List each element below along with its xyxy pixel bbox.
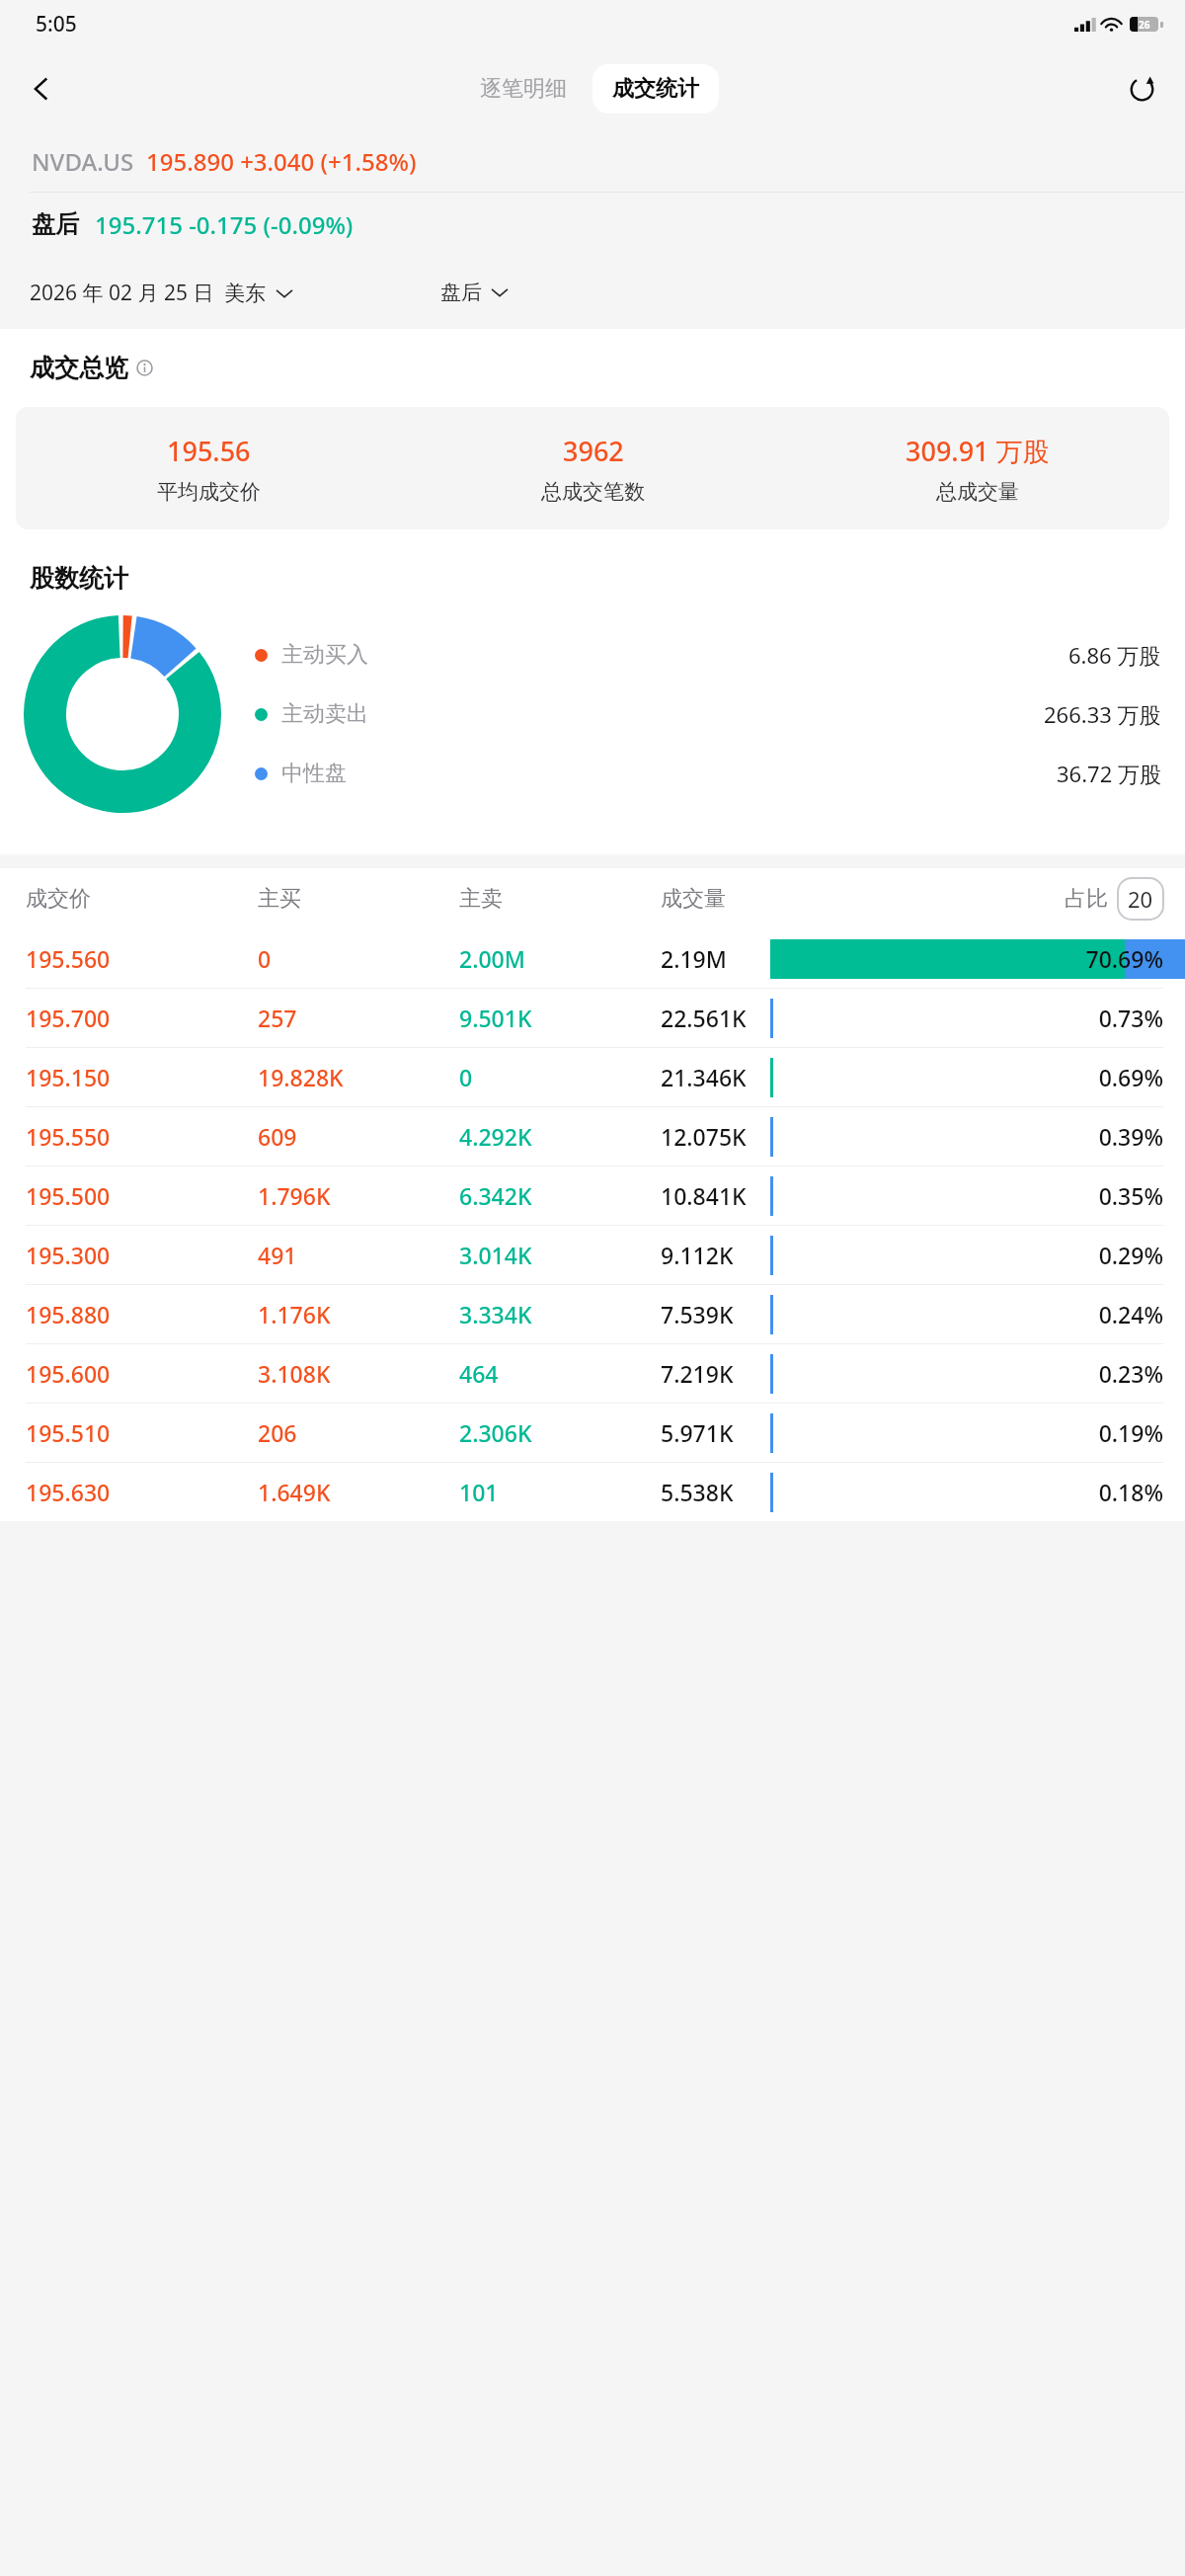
staticText: 0: [459, 1062, 661, 1092]
staticText: 1.796K: [258, 1180, 459, 1211]
button[interactable]: 盘后: [440, 280, 508, 305]
staticText: 491: [258, 1240, 459, 1270]
button[interactable]: 195.500: [0, 1167, 1185, 1225]
button[interactable]: 195.510: [0, 1404, 1185, 1462]
staticText: 309.91 万股: [906, 433, 1050, 469]
staticText: 3.108K: [258, 1358, 459, 1389]
staticText: 6.86 万股: [1068, 640, 1161, 670]
staticText: 1.176K: [258, 1299, 459, 1329]
staticText: 195.150: [26, 1062, 258, 1092]
staticText: 70.69%: [882, 943, 1163, 974]
staticText: 0.73%: [882, 1003, 1163, 1033]
staticText: 总成交量: [936, 479, 1019, 505]
staticText: 195.550: [26, 1121, 258, 1152]
button[interactable]: 195.700: [0, 989, 1185, 1047]
staticText: 平均成交价: [157, 479, 261, 505]
staticText: 2.19M: [661, 943, 882, 974]
staticText: NVDA.US: [32, 145, 134, 178]
staticText: 195.890 +3.040 (+1.58%): [146, 145, 417, 178]
staticText: 26: [1139, 18, 1150, 32]
button[interactable]: Back: [14, 61, 69, 117]
button[interactable]: 195.560: [0, 929, 1185, 988]
staticText: 195.715 -0.175 (-0.09%): [95, 208, 354, 241]
staticText: 主卖: [459, 885, 661, 913]
staticText: 3.014K: [459, 1240, 661, 1270]
staticText: 19.828K: [258, 1062, 459, 1092]
staticText: 0: [258, 943, 459, 974]
staticText: 主动卖出: [281, 700, 368, 728]
staticText: 2.00M: [459, 943, 661, 974]
staticText: 2.306K: [459, 1417, 661, 1448]
staticText: 0.35%: [882, 1180, 1163, 1211]
button[interactable]: 逐笔明细: [466, 65, 581, 113]
staticText: 36.72 万股: [1057, 759, 1161, 788]
staticText: 2026 年 02 月 25 日 美东: [30, 279, 267, 307]
staticText: 101: [459, 1477, 661, 1507]
button[interactable]: 195.630: [0, 1463, 1185, 1521]
staticText: 3.334K: [459, 1299, 661, 1329]
staticText: 266.33 万股: [1044, 699, 1161, 729]
staticText: 9.501K: [459, 1003, 661, 1033]
button[interactable]: 195.300: [0, 1226, 1185, 1284]
staticText: 20: [1128, 884, 1153, 914]
staticText: 195.630: [26, 1477, 258, 1507]
staticText: 0.18%: [882, 1477, 1163, 1507]
staticText: 195.560: [26, 943, 258, 974]
staticText: 盘后: [32, 209, 79, 239]
staticText: 3962: [563, 433, 624, 469]
staticText: 股数统计: [30, 563, 128, 594]
button[interactable]: 195.150: [0, 1048, 1185, 1106]
button[interactable]: 195.880: [0, 1285, 1185, 1343]
staticText: 0.39%: [882, 1121, 1163, 1152]
staticText: 主动买入: [281, 641, 368, 669]
button[interactable]: Refresh: [1114, 61, 1169, 117]
staticText: 成交量: [661, 885, 882, 913]
staticText: 成交价: [26, 885, 258, 913]
staticText: 盘后: [440, 280, 482, 305]
staticText: 成交总览: [30, 353, 128, 383]
staticText: 7.219K: [661, 1358, 882, 1389]
staticText: 22.561K: [661, 1003, 882, 1033]
staticText: 10.841K: [661, 1180, 882, 1211]
staticText: 总成交笔数: [541, 479, 645, 505]
staticText: 占比: [1065, 885, 1108, 913]
staticText: 6.342K: [459, 1180, 661, 1211]
staticText: 1.649K: [258, 1477, 459, 1507]
staticText: 257: [258, 1003, 459, 1033]
staticText: 9.112K: [661, 1240, 882, 1270]
staticText: 7.539K: [661, 1299, 882, 1329]
button[interactable]: 195.600: [0, 1344, 1185, 1403]
button[interactable]: 2026 年 02 月 25 日 美东: [30, 279, 292, 307]
staticText: 195.600: [26, 1358, 258, 1389]
staticText: 逐笔明细: [480, 75, 567, 103]
staticText: 195.700: [26, 1003, 258, 1033]
staticText: 中性盘: [281, 760, 347, 787]
staticText: 195.880: [26, 1299, 258, 1329]
staticText: 195.500: [26, 1180, 258, 1211]
button[interactable]: 195.550: [0, 1107, 1185, 1166]
staticText: 0.69%: [882, 1062, 1163, 1092]
staticText: 609: [258, 1121, 459, 1152]
staticText: 5:05: [36, 10, 77, 39]
staticText: 0.19%: [882, 1417, 1163, 1448]
staticText: 195.510: [26, 1417, 258, 1448]
staticText: 464: [459, 1358, 661, 1389]
staticText: 12.075K: [661, 1121, 882, 1152]
staticText: 5.538K: [661, 1477, 882, 1507]
staticText: 0.23%: [882, 1358, 1163, 1389]
button[interactable]: 成交统计: [592, 64, 719, 114]
staticText: 4.292K: [459, 1121, 661, 1152]
staticText: 195.56: [167, 433, 251, 469]
staticText: 0.24%: [882, 1299, 1163, 1329]
staticText: 195.300: [26, 1240, 258, 1270]
staticText: 21.346K: [661, 1062, 882, 1092]
staticText: 206: [258, 1417, 459, 1448]
button[interactable]: 20: [1118, 878, 1163, 920]
staticText: 主买: [258, 885, 459, 913]
staticText: 成交统计: [612, 75, 699, 103]
staticText: 0.29%: [882, 1240, 1163, 1270]
staticText: 5.971K: [661, 1417, 882, 1448]
